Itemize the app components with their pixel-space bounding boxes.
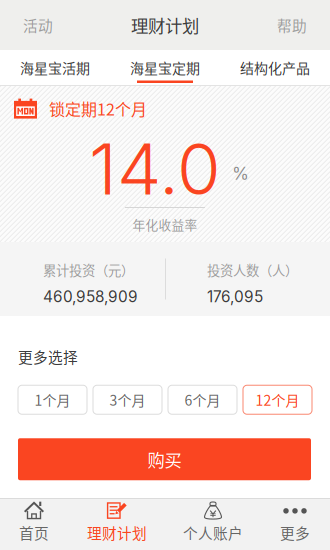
staticText: % xyxy=(232,163,249,184)
button[interactable]: 活动 xyxy=(0,0,76,50)
staticText: 年化收益率 xyxy=(132,215,197,233)
staticText: 海星宝活期 xyxy=(20,57,90,78)
staticText: 海星宝定期 xyxy=(130,57,200,78)
button[interactable]: 结构化产品 xyxy=(220,50,330,85)
button[interactable]: 帮助 xyxy=(254,0,330,50)
button[interactable]: 购买 xyxy=(18,438,311,480)
staticText: 投资人数（人） xyxy=(207,260,298,279)
staticText: 结构化产品 xyxy=(240,57,310,78)
staticText: 3个月 xyxy=(109,390,145,410)
staticText: 首页 xyxy=(19,522,49,543)
staticText: 176,095 xyxy=(207,287,263,306)
button[interactable]: 首页 xyxy=(0,499,68,550)
staticText: 购买 xyxy=(147,447,181,472)
button[interactable]: 12个月 xyxy=(243,385,312,414)
staticText: 14.0 xyxy=(89,126,221,211)
staticText: 6个月 xyxy=(184,390,220,410)
button[interactable]: 海星宝活期 xyxy=(0,50,110,85)
staticText: 1个月 xyxy=(34,390,70,410)
button[interactable]: 个人账户 xyxy=(166,499,260,550)
button[interactable]: 更多 xyxy=(260,499,330,550)
staticText: 活动 xyxy=(23,14,53,36)
staticText: 460,958,909 xyxy=(43,287,138,306)
button[interactable]: 1个月 xyxy=(18,385,87,414)
staticText: 个人账户 xyxy=(183,522,243,543)
button[interactable]: 海星宝定期 xyxy=(110,50,220,85)
button[interactable]: 理财计划 xyxy=(68,499,166,550)
staticText: 理财计划 xyxy=(131,12,199,38)
staticText: 锁定期12个月 xyxy=(49,97,147,120)
staticText: 累计投资（元） xyxy=(43,260,134,279)
staticText: 12个月 xyxy=(255,390,299,410)
button[interactable]: 3个月 xyxy=(93,385,162,414)
staticText: 更多 xyxy=(280,522,310,543)
staticText: 理财计划 xyxy=(87,522,147,543)
staticText: 更多选择 xyxy=(18,346,78,367)
button[interactable]: 6个月 xyxy=(168,385,237,414)
staticText: 帮助 xyxy=(277,14,307,36)
